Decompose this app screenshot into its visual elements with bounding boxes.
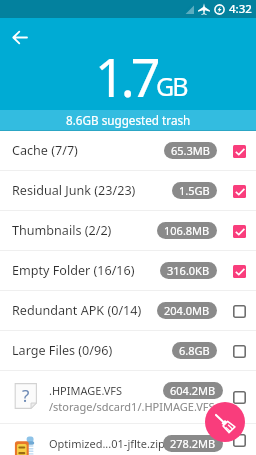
staticText: ? (22, 384, 30, 407)
button[interactable]: ? (0, 371, 256, 423)
button[interactable]: Select item (232, 144, 246, 158)
button[interactable]: Clean junk (205, 402, 245, 442)
staticText: Cache (7/7) (12, 142, 164, 159)
button[interactable]: Select item (232, 264, 246, 278)
staticText: 316.0KB (167, 263, 210, 278)
button[interactable]: Redundant APK (0/14) (0, 291, 256, 331)
button[interactable]: Select item (232, 344, 246, 358)
staticText: 4:32 (229, 1, 252, 17)
button[interactable]: Large Files (0/96) (0, 331, 256, 371)
button[interactable]: Back (7, 24, 33, 50)
staticText: Redundant APK (0/14) (12, 302, 157, 319)
staticText: Large Files (0/96) (12, 342, 172, 359)
staticText: /storage/sdcard1/.HPIMAGE.VFS (49, 399, 215, 414)
button[interactable]: Select item (232, 433, 246, 447)
staticText: Optimized...01-jflte.zip (49, 436, 165, 451)
button[interactable]: Cache (7/7) (0, 131, 256, 171)
button[interactable]: Select item (232, 224, 246, 238)
staticText: 1.7 (95, 41, 157, 112)
button[interactable]: Select item (232, 390, 246, 404)
staticText: GB (156, 69, 187, 103)
staticText: 278.2MB (170, 436, 216, 451)
staticText: Residual Junk (23/23) (12, 182, 172, 199)
button[interactable]: Thumbnails (2/2) (0, 211, 256, 251)
staticText: 6.8GB (179, 343, 210, 358)
button[interactable]: Select item (232, 304, 246, 318)
button[interactable]: Empty Folder (16/16) (0, 251, 256, 291)
staticText: 604.2MB (170, 383, 216, 398)
button[interactable]: Residual Junk (23/23) (0, 171, 256, 211)
staticText: Empty Folder (16/16) (12, 262, 160, 279)
staticText: 204.0MB (164, 303, 210, 318)
button[interactable]: Select item (232, 184, 246, 198)
staticText: 65.3MB (171, 143, 210, 158)
staticText: 8.6GB suggested trash (66, 112, 191, 128)
staticText: 1.5GB (179, 183, 210, 198)
staticText: .HPIMAGE.VFS (49, 383, 123, 398)
staticText: 106.8MB (164, 223, 210, 238)
button[interactable]: Optimized...01-jflte.zip (0, 424, 256, 455)
staticText: Thumbnails (2/2) (12, 222, 157, 239)
